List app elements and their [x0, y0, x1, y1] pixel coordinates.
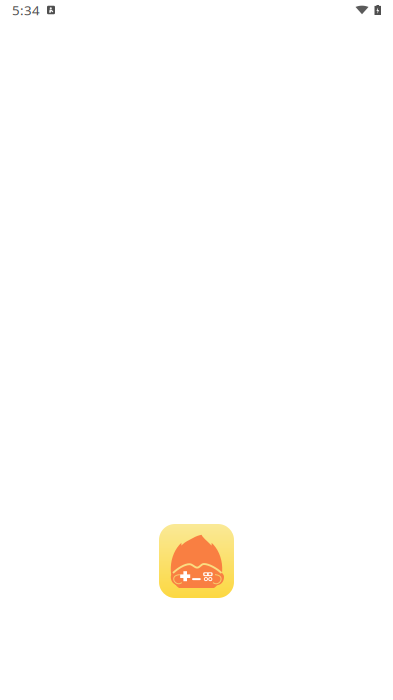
staticText: 5:34 [12, 1, 40, 19]
